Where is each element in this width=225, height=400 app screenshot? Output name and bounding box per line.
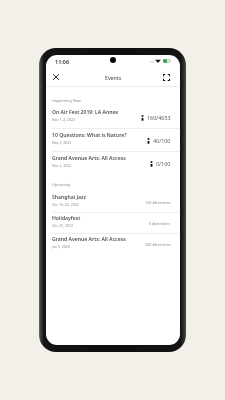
button[interactable]: Holidayfest <box>46 213 180 234</box>
staticText: 0/100 <box>156 160 171 167</box>
staticText: Dec 25, 2022 <box>52 223 73 228</box>
button[interactable]: Shanghai Jazz <box>46 192 180 213</box>
staticText: Jan 5, 2023 <box>52 244 70 249</box>
staticText: Happening Now <box>52 98 81 103</box>
staticText: Nov 2, 2022 <box>52 163 72 168</box>
staticText: 0 Attendees <box>149 221 171 226</box>
button[interactable]: Grand Avenue Arts: All Access <box>46 234 180 255</box>
button[interactable]: Scan code <box>159 70 173 84</box>
staticText: Nov 1–4, 2022 <box>52 117 76 122</box>
button[interactable]: On Air Fest 2019: LA Annex <box>46 106 180 129</box>
staticText: 40/100 <box>153 137 171 144</box>
staticText: 120 Attendees <box>145 200 171 205</box>
staticText: 240 Attendees <box>145 242 171 247</box>
staticText: Events <box>105 74 122 81</box>
button[interactable]: Close <box>49 70 63 84</box>
button[interactable]: 10 Questions: What is Nature? <box>46 129 180 152</box>
staticText: Dec 16–20, 2022 <box>52 202 79 207</box>
staticText: Grand Avenue Arts: All Access <box>52 236 126 243</box>
staticText: Holidayfest <box>52 215 81 222</box>
button[interactable]: Grand Avenue Arts: All Access <box>46 152 180 175</box>
staticText: Grand Avenue Arts: All Access <box>52 155 126 162</box>
staticText: 160/4653 <box>147 114 171 121</box>
staticText: Nov 2, 2022 <box>52 140 72 145</box>
staticText: Shanghai Jazz <box>52 194 86 201</box>
staticText: 11:06 <box>55 58 70 65</box>
staticText: 10 Questions: What is Nature? <box>52 132 127 139</box>
staticText: Upcoming <box>52 182 71 187</box>
staticText: On Air Fest 2019: LA Annex <box>52 109 119 116</box>
